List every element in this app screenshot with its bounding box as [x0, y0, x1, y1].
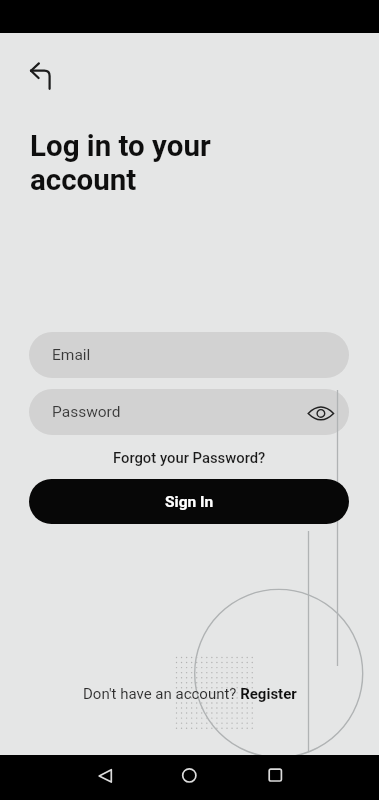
button[interactable] [22, 56, 60, 98]
button[interactable]: Email [29, 332, 349, 378]
button[interactable] [177, 763, 201, 787]
button[interactable] [93, 764, 117, 788]
staticText: Log in to your [30, 129, 211, 164]
button[interactable]: Forgot your Password? [113, 449, 266, 466]
button[interactable]: Password [29, 389, 349, 435]
staticText: Password [52, 403, 121, 421]
button[interactable]: Don't have an account? Register [83, 685, 297, 703]
staticText: account [30, 163, 137, 198]
button[interactable] [263, 763, 287, 787]
staticText: Sign In [165, 493, 214, 511]
staticText: Email [52, 346, 91, 364]
button[interactable]: Sign In [29, 479, 349, 524]
